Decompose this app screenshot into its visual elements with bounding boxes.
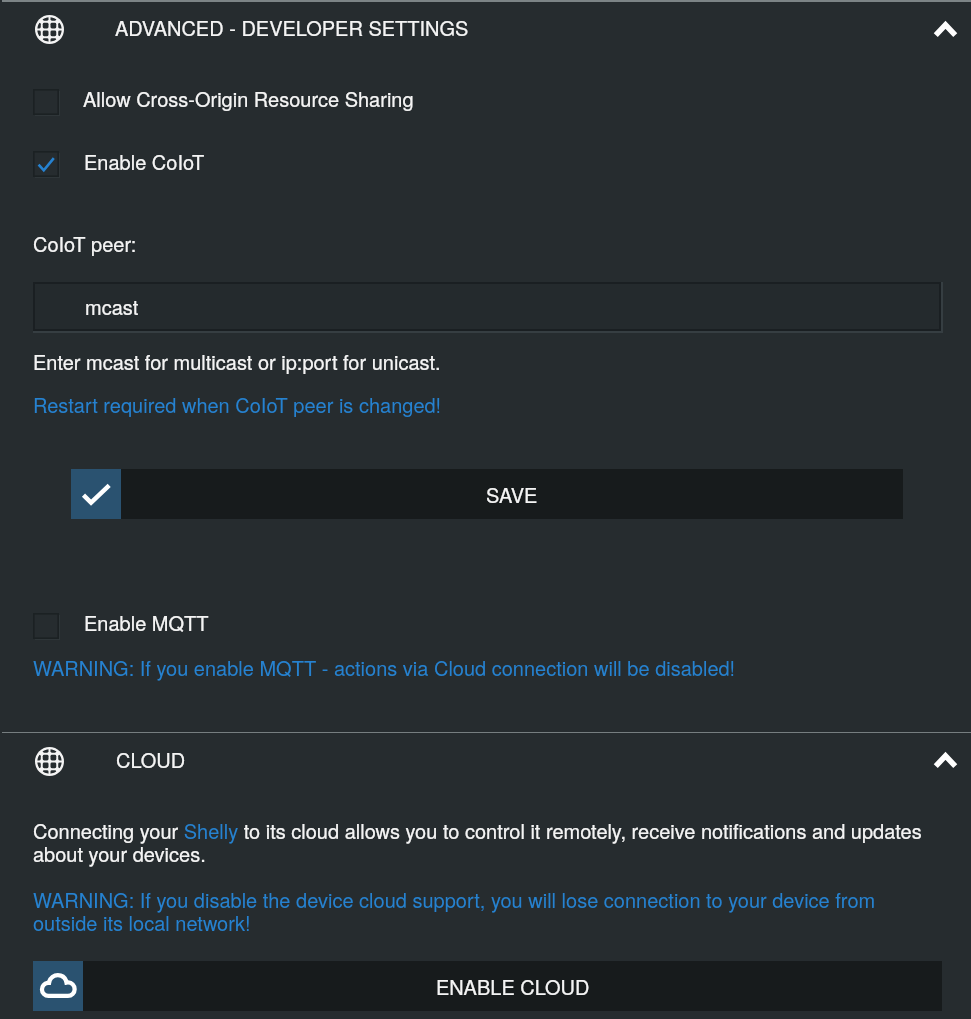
staticText: Enter mcast for multicast or ip:port for… bbox=[33, 347, 441, 376]
button[interactable]: Allow Cross-Origin Resource Sharing bbox=[0, 84, 971, 119]
staticText: SAVE bbox=[486, 480, 538, 509]
staticText: Connecting your Shelly to its cloud allo… bbox=[33, 816, 931, 868]
button[interactable]: Enable CoIoT bbox=[0, 146, 971, 181]
staticText: WARNING: If you enable MQTT - actions vi… bbox=[33, 653, 736, 682]
button[interactable]: CLOUD bbox=[0, 733, 971, 789]
staticText: CoIoT peer: bbox=[33, 229, 137, 258]
staticText: WARNING: If you disable the device cloud… bbox=[33, 885, 883, 937]
other: Collapse cloud section bbox=[933, 753, 958, 769]
button[interactable]: ADVANCED - DEVELOPER SETTINGS bbox=[0, 2, 971, 57]
staticText: mcast bbox=[85, 292, 139, 321]
staticText: Restart required when CoIoT peer is chan… bbox=[33, 390, 442, 419]
other: Collapse developer settings bbox=[933, 22, 958, 38]
staticText: ADVANCED - DEVELOPER SETTINGS bbox=[115, 13, 469, 42]
button[interactable]: ENABLE CLOUD bbox=[33, 961, 942, 1011]
button[interactable]: SAVE bbox=[71, 469, 903, 519]
button[interactable]: mcast bbox=[33, 282, 943, 333]
staticText: CLOUD bbox=[116, 745, 186, 774]
staticText: Enable MQTT bbox=[84, 608, 209, 637]
staticText: ENABLE CLOUD bbox=[436, 972, 590, 1001]
staticText: Allow Cross-Origin Resource Sharing bbox=[83, 84, 414, 113]
staticText: Enable CoIoT bbox=[84, 147, 205, 176]
button[interactable]: Enable MQTT bbox=[0, 608, 971, 643]
